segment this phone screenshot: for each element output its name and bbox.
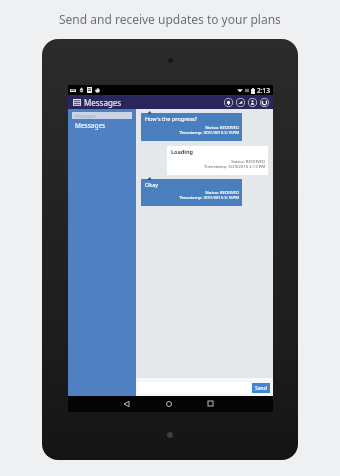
- button[interactable]: Refresh: [259, 97, 269, 108]
- button[interactable]: Back: [119, 396, 134, 411]
- button[interactable]: Loading: [167, 146, 268, 175]
- staticText: Status: RECEIVED: [141, 125, 239, 131]
- button[interactable]: Recent apps: [203, 396, 218, 411]
- staticText: How's the progress?: [145, 115, 198, 122]
- staticText: Messages: [75, 113, 96, 119]
- staticText: Loading: [171, 148, 193, 155]
- staticText: Okay: [145, 181, 159, 188]
- staticText: Status: RECEIVED: [167, 159, 265, 165]
- staticText: Timestamp: 3/31/2016 3:15PM: [141, 130, 239, 136]
- button[interactable]: Messages: [72, 112, 132, 119]
- staticText: Timestamp: 3/29/2016 2:13 PM: [167, 164, 265, 170]
- button[interactable]: How's the progress?: [141, 113, 242, 141]
- button[interactable]: Open navigation drawer: [73, 97, 81, 107]
- staticText: Messages: [84, 97, 122, 108]
- button[interactable]: Messages: [68, 119, 136, 132]
- button[interactable]: Home: [161, 396, 176, 411]
- staticText: Messages: [75, 121, 106, 130]
- button[interactable]: Notifications: [223, 97, 233, 108]
- button[interactable]: Attach: [235, 97, 245, 108]
- staticText: Send and receive updates to your plans: [59, 11, 281, 27]
- staticText: Send: [255, 385, 267, 392]
- button[interactable]: Account: [247, 97, 257, 108]
- button[interactable]: Send: [252, 383, 270, 393]
- staticText: 2:13: [257, 86, 270, 95]
- staticText: Timestamp: 3/31/2016 3:16PM: [141, 195, 239, 201]
- button[interactable]: Okay: [141, 179, 242, 206]
- staticText: Status: RECEIVED: [141, 190, 239, 196]
